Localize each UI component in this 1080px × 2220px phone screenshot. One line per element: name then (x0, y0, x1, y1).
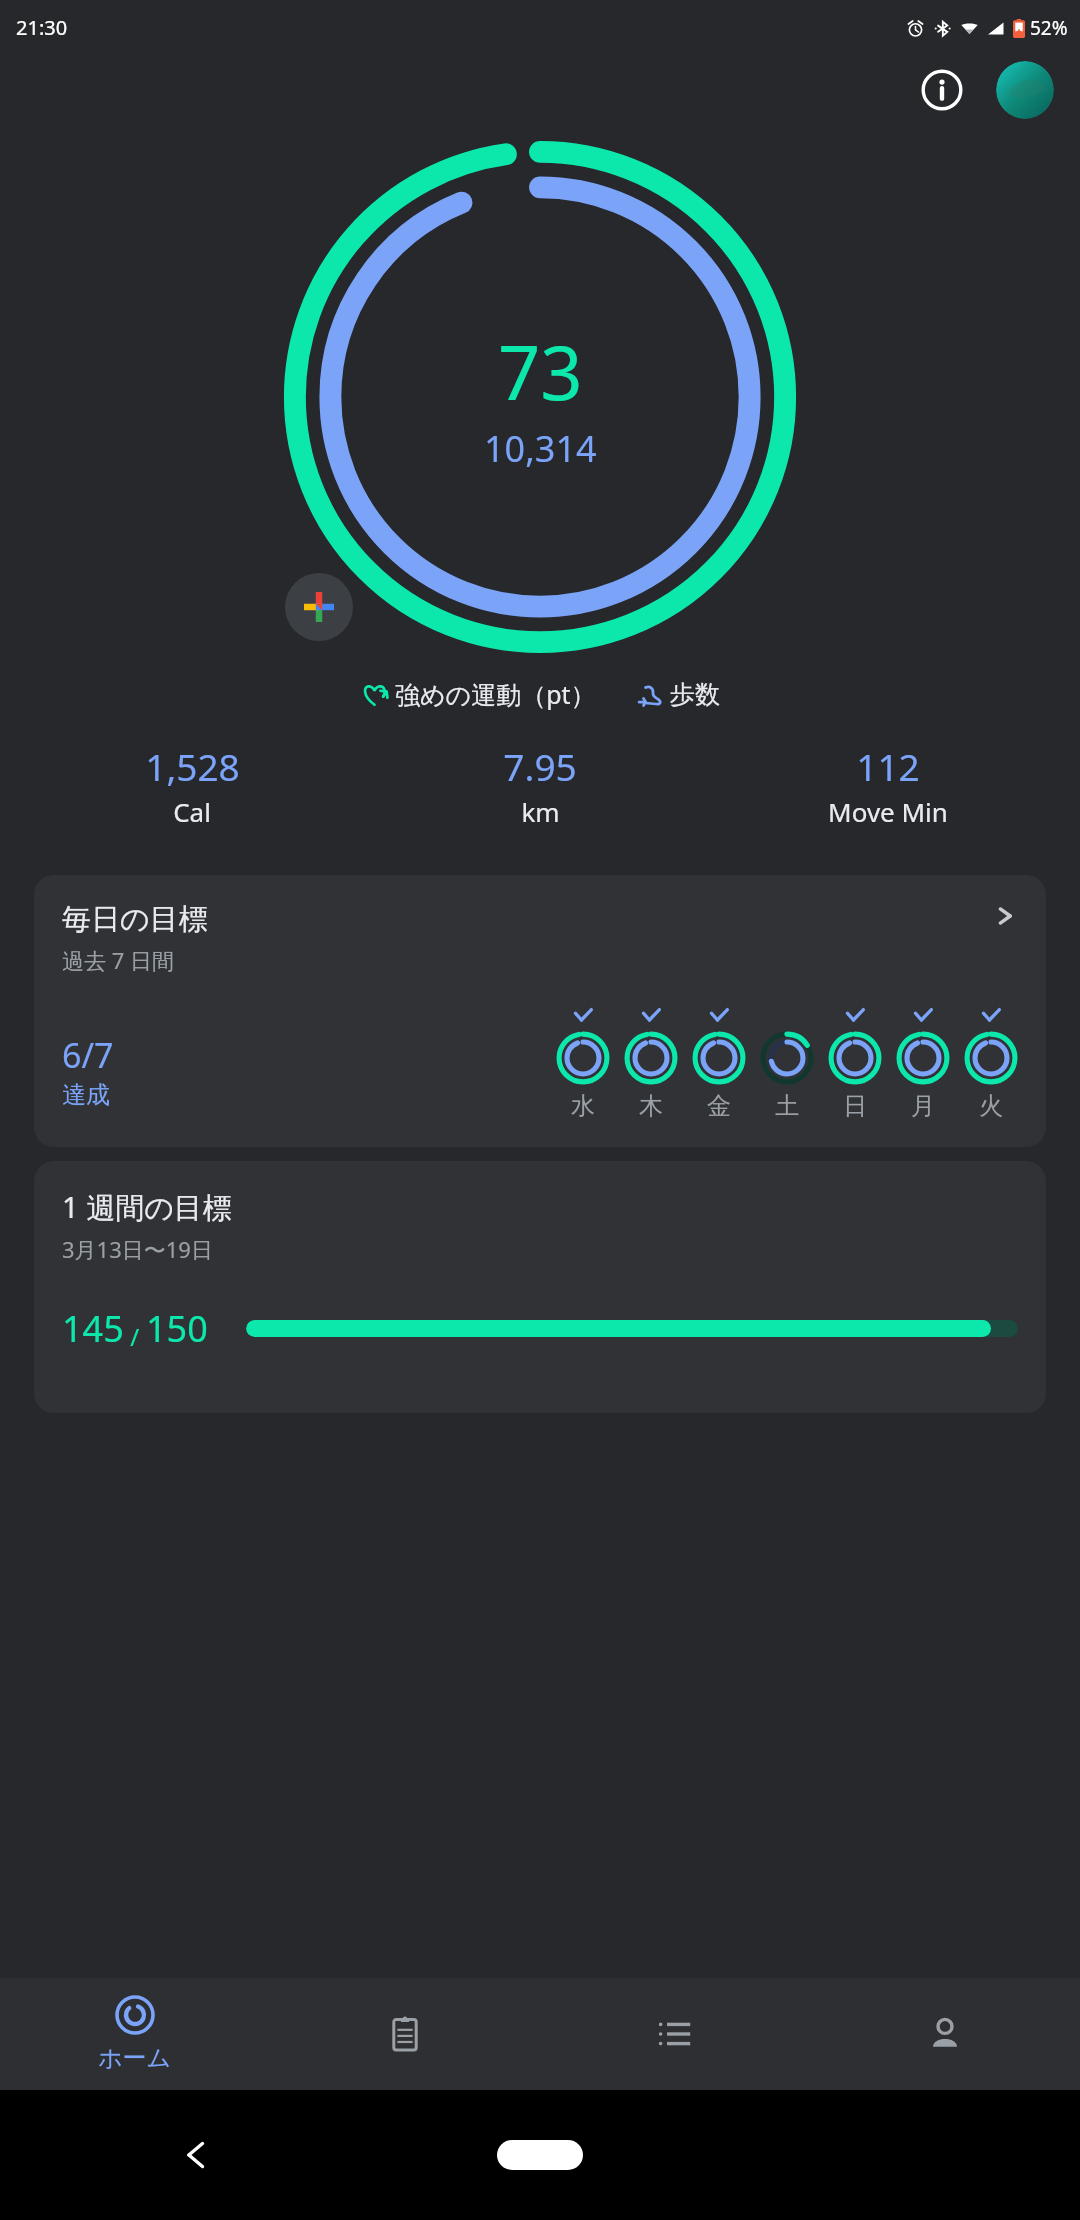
staticText: 歩数 (670, 679, 720, 710)
staticText: 150 (146, 1304, 208, 1353)
staticText: 毎日の目標 (62, 901, 208, 938)
staticText: Cal (173, 794, 211, 829)
staticText: 過去 7 日間 (62, 945, 175, 975)
button[interactable]: 毎日の目標 (34, 875, 1046, 1147)
other: Back (178, 2138, 212, 2172)
button[interactable]: 歩数 (638, 679, 720, 710)
staticText: 火 (979, 1091, 1003, 1121)
staticText: 145 (62, 1304, 124, 1353)
staticText: km (521, 794, 560, 829)
staticText: 21:30 (16, 14, 68, 41)
staticText: 73 (498, 321, 583, 422)
button[interactable]: 強めの運動（pt） (361, 677, 596, 711)
staticText: 1 週間の目標 (62, 1187, 232, 1227)
staticText: 強めの運動（pt） (395, 677, 596, 711)
button[interactable]: 1 週間の目標 (34, 1161, 1046, 1413)
staticText: 6/7 (62, 1032, 114, 1078)
button[interactable]: Browse (540, 1978, 810, 2090)
staticText: / (124, 1320, 146, 1353)
staticText: 10,314 (484, 424, 597, 473)
button[interactable]: 112 (714, 741, 1062, 829)
staticText: 3月13日〜19日 (62, 1234, 213, 1264)
staticText: Move Min (828, 794, 948, 829)
staticText: 7.95 (503, 741, 577, 791)
button[interactable]: Information (914, 62, 970, 118)
staticText: 日 (843, 1091, 867, 1121)
staticText: 土 (775, 1091, 799, 1121)
button[interactable]: Add activity (285, 573, 353, 641)
button[interactable]: ホーム (0, 1978, 270, 2090)
other: Home (497, 2140, 583, 2170)
staticText: 月 (911, 1091, 935, 1121)
button[interactable]: 7.95 (366, 741, 714, 829)
staticText: 達成 (62, 1080, 110, 1110)
button[interactable]: Profile (996, 61, 1054, 119)
staticText: 木 (639, 1091, 663, 1121)
staticText: 52% (1030, 15, 1068, 41)
staticText: ホーム (98, 2043, 172, 2073)
staticText: 1,528 (145, 741, 240, 791)
button[interactable]: Journal (270, 1978, 540, 2090)
staticText: 水 (571, 1091, 595, 1121)
button[interactable]: 1,528 (18, 741, 366, 829)
staticText: 金 (707, 1091, 731, 1121)
staticText: 112 (856, 741, 920, 791)
button[interactable]: Profile (810, 1978, 1080, 2090)
